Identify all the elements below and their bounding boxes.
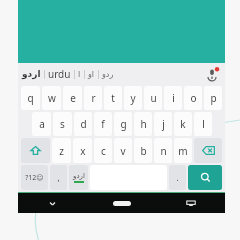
staticText: h	[140, 117, 147, 131]
button[interactable]: n	[154, 138, 172, 163]
staticText: f	[101, 117, 105, 131]
button[interactable]: x	[73, 138, 92, 163]
button[interactable]: s	[53, 112, 72, 136]
button[interactable]: w	[42, 86, 61, 110]
staticText: m	[178, 144, 188, 158]
staticText: z	[59, 144, 64, 158]
button[interactable]: q	[21, 86, 40, 110]
button[interactable]: m	[174, 138, 192, 163]
button[interactable]: g	[114, 112, 132, 136]
button[interactable]: Home	[87, 193, 156, 213]
button[interactable]: Search	[188, 165, 222, 190]
staticText: ,	[57, 172, 60, 183]
button[interactable]: b	[134, 138, 152, 163]
staticText: n	[160, 144, 167, 158]
staticText: ا	[78, 70, 81, 79]
staticText: a	[39, 117, 45, 131]
button[interactable]: v	[114, 138, 132, 163]
staticText: او	[88, 70, 95, 79]
staticText: l	[202, 117, 205, 131]
staticText: v	[120, 144, 126, 158]
button[interactable]: u	[144, 86, 162, 110]
button[interactable]: o	[184, 86, 202, 110]
button[interactable]: ?12☺	[21, 165, 48, 190]
button[interactable]: c	[94, 138, 112, 163]
staticText: g	[120, 117, 127, 131]
button[interactable]	[21, 138, 50, 163]
button[interactable]: اردو	[69, 165, 88, 190]
staticText: w	[48, 91, 56, 105]
button[interactable]: h	[134, 112, 152, 136]
staticText: اردو	[73, 172, 85, 180]
staticText: q	[27, 91, 34, 105]
button[interactable]: Hide keyboard	[18, 193, 87, 213]
button[interactable]: p	[204, 86, 222, 110]
staticText: b	[140, 144, 147, 158]
staticText: y	[130, 91, 136, 105]
button[interactable]: t	[104, 86, 122, 110]
staticText: .	[176, 172, 179, 183]
button[interactable]: k	[174, 112, 192, 136]
button[interactable]: Voice input	[203, 65, 221, 83]
button[interactable]: f	[94, 112, 112, 136]
button[interactable]: j	[154, 112, 172, 136]
staticText: x	[80, 144, 86, 158]
staticText: s	[60, 117, 65, 131]
staticText: u	[150, 91, 157, 105]
button[interactable]: a	[32, 112, 51, 136]
button[interactable]: z	[52, 138, 71, 163]
button[interactable]: .	[169, 165, 186, 190]
staticText: t	[111, 91, 115, 105]
staticText: p	[210, 91, 217, 105]
button[interactable]: e	[63, 86, 82, 110]
button[interactable]: y	[124, 86, 142, 110]
staticText: e	[70, 91, 76, 105]
staticText: ?12☺	[25, 173, 44, 183]
staticText: r	[91, 91, 96, 105]
staticText: d	[80, 117, 87, 131]
button[interactable]: l	[194, 112, 212, 136]
staticText: اردو	[22, 69, 41, 79]
staticText: i	[172, 91, 175, 105]
staticText: j	[162, 117, 165, 131]
button[interactable]: d	[74, 112, 92, 136]
staticText: c	[101, 144, 106, 158]
button[interactable]: ,	[50, 165, 67, 190]
staticText: o	[190, 91, 197, 105]
button[interactable]: Switch keyboard	[156, 193, 225, 213]
button[interactable]: r	[84, 86, 102, 110]
staticText: k	[180, 117, 186, 131]
staticText: urdu	[48, 67, 71, 81]
staticText: ردو	[102, 70, 114, 79]
button[interactable]	[194, 138, 222, 163]
button[interactable]: i	[164, 86, 182, 110]
